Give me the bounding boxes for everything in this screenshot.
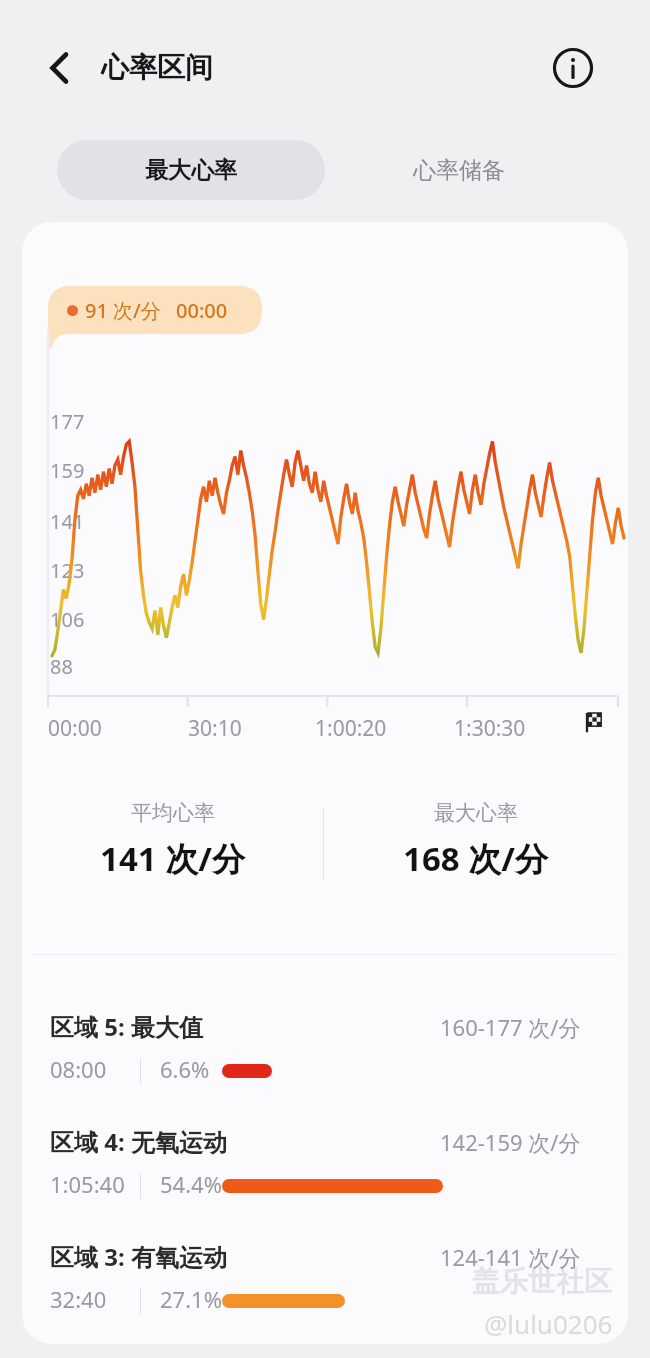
staticText: 区域 5: 最大值 [50, 1010, 203, 1043]
staticText: 区域 3: 有氧运动 [50, 1240, 227, 1273]
staticText: 88 [50, 653, 73, 680]
staticText: 盖乐世社区 [472, 1264, 612, 1299]
staticText: @lulu0206 [484, 1306, 613, 1341]
staticText: 54.4% [160, 1169, 222, 1199]
staticText: 心率区间 [101, 50, 213, 85]
staticText: 区域 4: 无氧运动 [50, 1125, 227, 1158]
button[interactable]: 区域 3: 有氧运动 [22, 1230, 628, 1342]
button[interactable]: Back [33, 42, 85, 94]
staticText: 141 次/分 [100, 836, 245, 881]
staticText: 160-177 次/分 [440, 1012, 581, 1042]
staticText: 6.6% [160, 1054, 210, 1084]
staticText: 00:00 [48, 714, 102, 743]
button[interactable]: Information [548, 43, 598, 93]
staticText: 124-141 次/分 [440, 1242, 581, 1272]
button[interactable]: 区域 5: 最大值 [22, 1000, 628, 1112]
staticText: 1:00:20 [315, 714, 387, 743]
staticText: 142-159 次/分 [440, 1127, 581, 1157]
other: Finish [582, 711, 608, 737]
staticText: 32:40 [50, 1284, 107, 1314]
button[interactable]: 最大心率 [57, 140, 325, 200]
staticText: 最大心率 [434, 800, 518, 826]
button[interactable]: 区域 4: 无氧运动 [22, 1115, 628, 1227]
staticText: 106 [50, 606, 85, 633]
staticText: 30:10 [188, 714, 242, 743]
staticText: 177 [50, 408, 85, 435]
staticText: 1:30:30 [454, 714, 526, 743]
staticText: 平均心率 [131, 800, 215, 826]
staticText: 168 次/分 [403, 836, 548, 881]
staticText: 159 [50, 457, 85, 484]
staticText: 123 [50, 557, 85, 584]
staticText: 心率储备 [413, 156, 505, 185]
staticText: 08:00 [50, 1054, 107, 1084]
staticText: 141 [50, 508, 85, 535]
button[interactable]: 心率储备 [325, 140, 593, 200]
staticText: 00:00 [176, 297, 228, 324]
staticText: 91 次/分 [85, 297, 161, 324]
staticText: 最大心率 [145, 156, 237, 185]
staticText: 1:05:40 [50, 1169, 125, 1199]
staticText: 27.1% [160, 1284, 222, 1314]
